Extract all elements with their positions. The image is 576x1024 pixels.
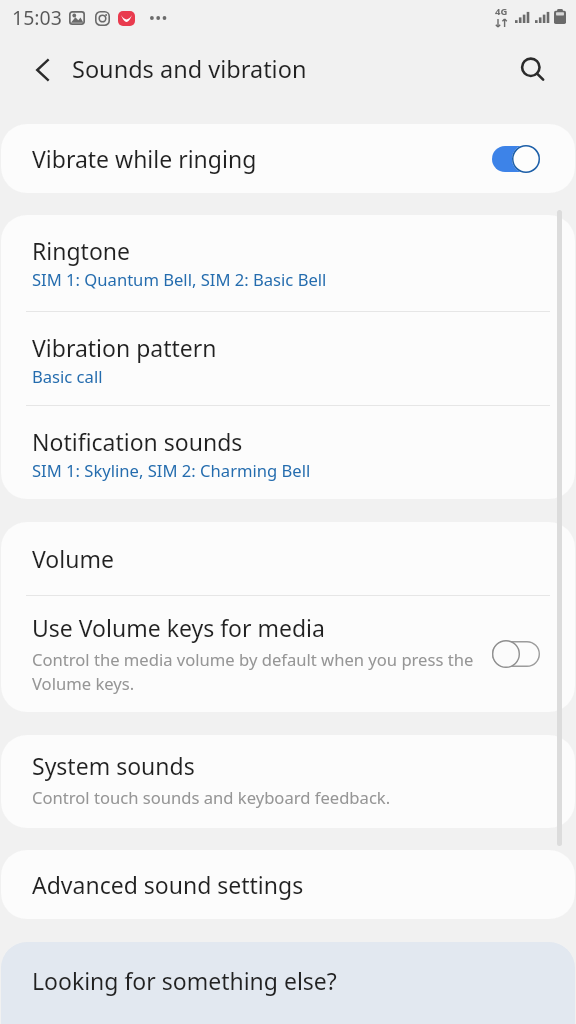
staticText: SIM 1: Skyline, SIM 2: Charming Bell: [32, 459, 311, 482]
staticText: Control the media volume by default when…: [32, 648, 483, 695]
staticText: Notification sounds: [32, 426, 243, 457]
button[interactable]: Search: [511, 48, 555, 92]
button[interactable]: Notification sounds: [1, 406, 575, 499]
button[interactable]: Advanced sound settings: [1, 850, 575, 919]
button[interactable]: Vibration pattern: [1, 312, 575, 405]
staticText: SIM 1: Quantum Bell, SIM 2: Basic Bell: [32, 268, 327, 291]
button[interactable]: Ringtone: [1, 215, 575, 311]
button[interactable]: Vibrate while ringing: [1, 124, 575, 193]
staticText: System sounds: [32, 750, 195, 781]
staticText: Vibration pattern: [32, 332, 217, 363]
button[interactable]: Looking for something else?: [1, 942, 575, 1024]
staticText: Control touch sounds and keyboard feedba…: [32, 786, 391, 809]
button[interactable]: Vibrate while ringing, on: [483, 137, 549, 181]
staticText: Ringtone: [32, 235, 131, 266]
button[interactable]: Volume: [1, 522, 575, 595]
button[interactable]: Use Volume keys for media: [1, 596, 575, 712]
staticText: Sounds and vibration: [72, 53, 307, 85]
button[interactable]: System sounds: [1, 735, 575, 828]
staticText: Advanced sound settings: [32, 869, 304, 900]
staticText: Vibrate while ringing: [32, 143, 257, 174]
staticText: Looking for something else?: [32, 965, 337, 996]
staticText: Use Volume keys for media: [32, 612, 325, 643]
button[interactable]: Use Volume keys for media, off: [483, 632, 549, 676]
staticText: Volume: [32, 543, 114, 574]
staticText: 4G: [495, 5, 508, 18]
staticText: 15:03: [12, 4, 62, 31]
staticText: Basic call: [32, 365, 103, 388]
button[interactable]: Navigate up: [20, 48, 64, 92]
